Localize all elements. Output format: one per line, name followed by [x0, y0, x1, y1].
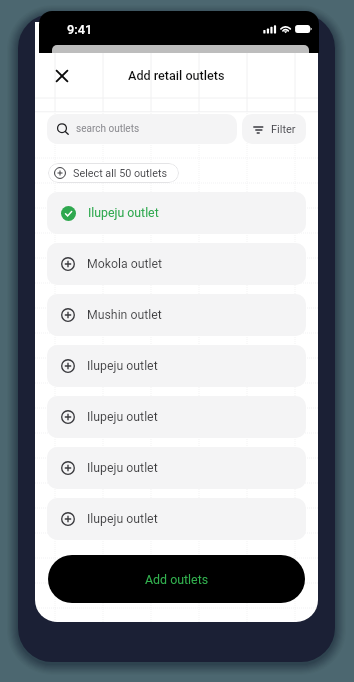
staticText: search outlets: [76, 123, 140, 135]
staticText: Ilupeju outlet: [87, 461, 158, 475]
staticText: Ilupeju outlet: [88, 206, 159, 220]
staticText: Mokola outlet: [87, 257, 163, 271]
button[interactable]: Ilupeju outlet: [47, 192, 306, 234]
staticText: Ilupeju outlet: [87, 410, 158, 424]
staticText: Ilupeju outlet: [87, 359, 158, 373]
staticText: Mushin outlet: [87, 308, 162, 322]
button[interactable]: Mokola outlet: [47, 243, 306, 285]
button[interactable]: Ilupeju outlet: [47, 396, 306, 438]
button[interactable]: Ilupeju outlet: [47, 498, 306, 540]
staticText: 9:41: [67, 22, 93, 37]
button[interactable]: Filter: [242, 114, 306, 144]
staticText: Filter: [271, 123, 296, 136]
button[interactable]: Mushin outlet: [47, 294, 306, 336]
staticText: Add outlets: [145, 572, 209, 587]
button[interactable]: search outlets: [47, 114, 237, 144]
button[interactable]: Add outlets: [48, 555, 305, 603]
button[interactable]: Close: [49, 63, 75, 89]
button[interactable]: Ilupeju outlet: [47, 447, 306, 489]
button[interactable]: Ilupeju outlet: [47, 345, 306, 387]
button[interactable]: Select all 50 outlets: [48, 163, 179, 183]
staticText: Select all 50 outlets: [73, 167, 168, 180]
staticText: Add retail outlets: [128, 68, 225, 83]
staticText: Ilupeju outlet: [87, 512, 158, 526]
